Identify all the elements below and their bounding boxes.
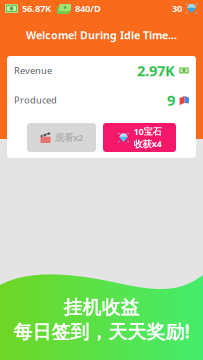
button[interactable]: 观看x2 [27,123,96,152]
staticText: 9 [167,90,175,110]
staticText: Revenue [14,64,52,77]
staticText: 观看x2 [55,131,83,144]
staticText: 56.87K [22,2,51,15]
staticText: 每日签到，天天奖励! [13,319,189,344]
staticText: 30 [172,2,182,15]
button[interactable]: 10宝石 [103,123,176,152]
staticText: Produced [14,94,57,106]
staticText: 10宝石 [133,125,161,137]
staticText: 收获x4 [133,137,161,150]
staticText: Welcome! During Idle Time... [26,28,177,42]
staticText: 挂机收益 [63,296,139,319]
staticText: 840/D [75,2,101,15]
staticText: 2.97K [137,61,175,80]
